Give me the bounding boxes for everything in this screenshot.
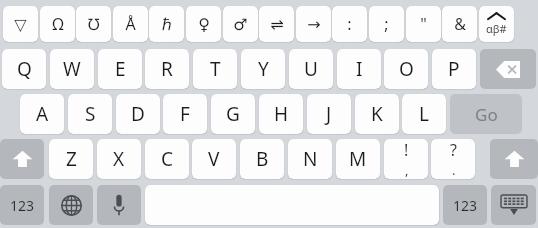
staticText: ?: [450, 139, 457, 161]
staticText: Å: [125, 13, 136, 35]
button[interactable]: Ω: [40, 6, 75, 42]
staticText: I: [356, 56, 363, 82]
button[interactable]: K: [355, 94, 399, 134]
button[interactable]: ;: [369, 6, 404, 42]
button[interactable]: 123: [0, 185, 44, 225]
button[interactable]: T: [193, 49, 237, 89]
button[interactable]: Å: [113, 6, 148, 42]
staticText: ,: [405, 161, 409, 179]
button[interactable]: Hide keyboard: [491, 185, 536, 225]
staticText: αβ#: [486, 21, 507, 36]
button[interactable]: ⇌: [259, 6, 294, 42]
staticText: H: [274, 101, 289, 127]
button[interactable]: V: [192, 139, 236, 179]
button[interactable]: &: [442, 6, 477, 42]
staticText: →: [307, 15, 321, 34]
staticText: B: [256, 146, 269, 172]
staticText: 123: [453, 196, 478, 215]
staticText: 123: [10, 196, 35, 215]
button[interactable]: Go: [450, 94, 522, 134]
staticText: F: [180, 101, 190, 127]
button[interactable]: D: [116, 94, 160, 134]
button[interactable]: Y: [241, 49, 285, 89]
staticText: O: [399, 56, 414, 82]
button[interactable]: R: [145, 49, 189, 89]
button[interactable]: S: [68, 94, 112, 134]
button[interactable]: M: [336, 139, 380, 179]
staticText: &: [454, 13, 466, 35]
staticText: X: [113, 146, 125, 172]
button[interactable]: Z: [49, 139, 93, 179]
button[interactable]: ♀: [186, 6, 221, 42]
staticText: N: [303, 146, 318, 172]
button[interactable]: ▽: [3, 6, 38, 42]
button[interactable]: !: [384, 139, 428, 179]
button[interactable]: H: [259, 94, 303, 134]
button[interactable]: →: [296, 6, 331, 42]
staticText: ": [420, 13, 427, 35]
button[interactable]: B: [240, 139, 284, 179]
button[interactable]: ℧: [76, 6, 111, 42]
staticText: E: [115, 56, 126, 82]
button[interactable]: ♂: [223, 6, 258, 42]
button[interactable]: ℏ: [149, 6, 184, 42]
staticText: M: [349, 146, 367, 172]
staticText: U: [304, 56, 318, 82]
button[interactable]: A: [20, 94, 64, 134]
button[interactable]: G: [211, 94, 255, 134]
button[interactable]: ": [406, 6, 441, 42]
button[interactable]: X: [97, 139, 141, 179]
staticText: Ω: [52, 13, 64, 35]
staticText: J: [326, 101, 332, 127]
staticText: L: [419, 101, 429, 127]
button[interactable]: N: [288, 139, 332, 179]
staticText: ;: [384, 13, 389, 35]
staticText: Go: [475, 103, 498, 126]
button[interactable]: 123: [443, 185, 487, 225]
button[interactable]: Shift: [490, 139, 538, 179]
button[interactable]: Backspace: [480, 49, 536, 89]
button[interactable]: L: [402, 94, 446, 134]
button[interactable]: J: [307, 94, 351, 134]
button[interactable]: C: [145, 139, 189, 179]
staticText: ℧: [87, 13, 100, 35]
staticText: K: [371, 101, 383, 127]
staticText: .: [452, 161, 456, 179]
button[interactable]: Alphabet and symbols: [479, 6, 514, 42]
staticText: C: [161, 146, 174, 172]
staticText: ▽: [14, 15, 27, 34]
staticText: P: [448, 56, 460, 82]
button[interactable]: :: [332, 6, 367, 42]
button[interactable]: ?: [431, 139, 475, 179]
button[interactable]: E: [98, 49, 142, 89]
staticText: ℏ: [162, 13, 172, 35]
staticText: ⇌: [270, 15, 284, 34]
staticText: W: [63, 56, 81, 82]
staticText: Q: [17, 56, 32, 82]
button[interactable]: Change language: [49, 185, 93, 225]
button[interactable]: I: [337, 49, 381, 89]
button[interactable]: Q: [2, 49, 46, 89]
staticText: V: [208, 146, 220, 172]
staticText: Y: [258, 56, 269, 82]
staticText: A: [36, 101, 49, 127]
button[interactable]: Shift: [0, 139, 44, 179]
staticText: S: [85, 101, 96, 127]
button[interactable]: U: [289, 49, 333, 89]
button[interactable]: F: [163, 94, 207, 134]
button[interactable]: Voice input: [97, 185, 141, 225]
button[interactable]: W: [50, 49, 94, 89]
staticText: ♂: [233, 15, 248, 34]
button[interactable]: P: [432, 49, 476, 89]
staticText: R: [161, 56, 173, 82]
staticText: :: [347, 13, 352, 35]
staticText: T: [210, 56, 221, 82]
button[interactable]: O: [384, 49, 428, 89]
staticText: Z: [66, 146, 77, 172]
staticText: ♀: [198, 15, 210, 34]
staticText: D: [131, 101, 145, 127]
staticText: G: [226, 101, 240, 127]
staticText: !: [404, 139, 409, 161]
